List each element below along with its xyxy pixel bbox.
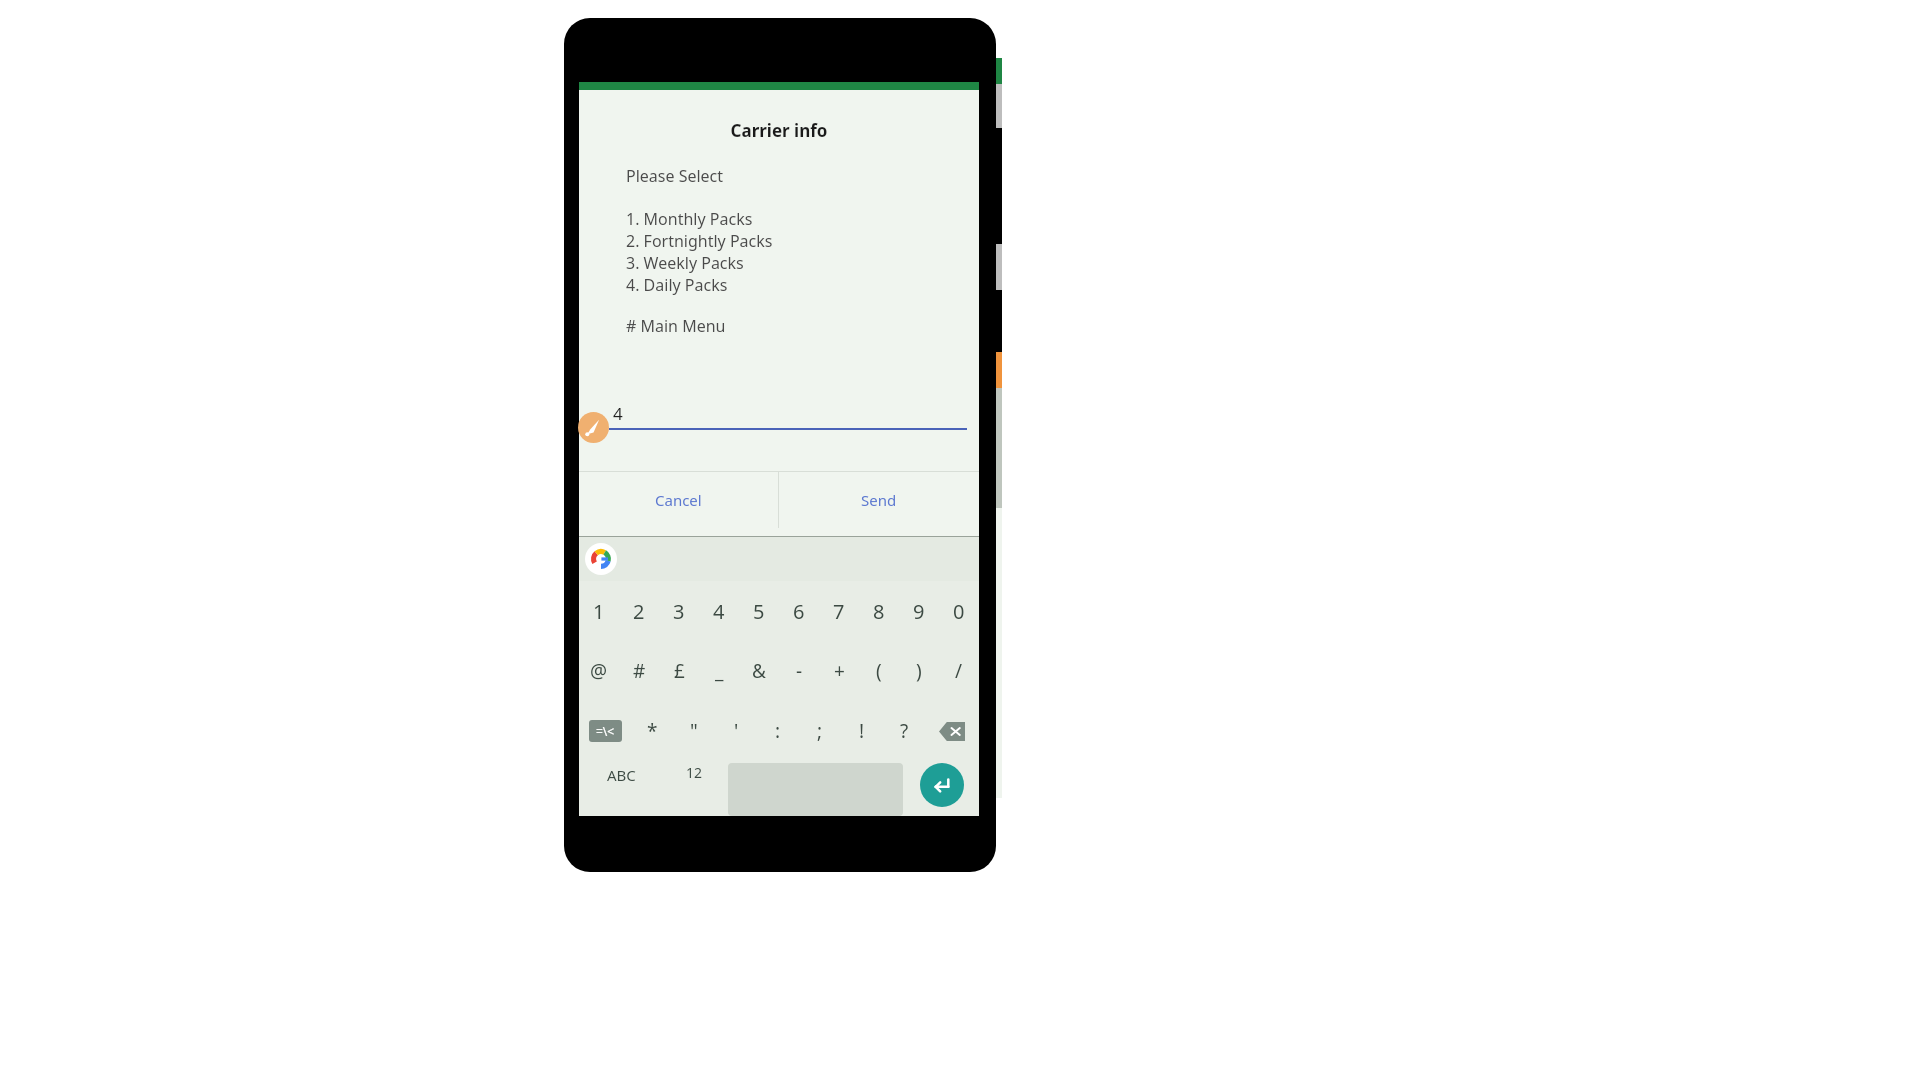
staticText: " [690, 718, 698, 744]
button[interactable]: : [757, 701, 799, 761]
button[interactable]: ( [859, 641, 899, 701]
staticText: ABC [607, 765, 636, 785]
staticText: ; [817, 718, 823, 744]
button[interactable]: _ [699, 641, 739, 701]
button[interactable]: =\< [579, 701, 632, 761]
staticText: Carrier info [579, 119, 979, 142]
button[interactable]: ABC [579, 761, 663, 816]
staticText: 2 [633, 598, 645, 625]
staticText: Cancel [655, 490, 702, 510]
staticText: ! [859, 718, 865, 744]
staticText: @ [590, 658, 608, 684]
button[interactable]: Cancel [579, 472, 778, 528]
button[interactable]: ; [799, 701, 841, 761]
staticText: 4 [613, 402, 623, 425]
staticText: 4. Daily Packs [626, 274, 728, 296]
staticText: 12 [686, 763, 703, 782]
staticText: ) [916, 658, 922, 684]
button[interactable]: 1 [579, 581, 619, 641]
button[interactable]: 0 [939, 581, 979, 641]
staticText: 0 [953, 598, 965, 625]
button[interactable]: / [939, 641, 979, 701]
button[interactable]: Send [779, 472, 979, 528]
button[interactable]: 9 [899, 581, 939, 641]
button[interactable]: ! [841, 701, 883, 761]
staticText: =\< [596, 723, 615, 739]
button[interactable]: @ [579, 641, 619, 701]
button[interactable]: ? [883, 701, 925, 761]
staticText: Please Select [626, 165, 724, 187]
button[interactable]: ) [899, 641, 939, 701]
button[interactable]: 5 [739, 581, 779, 641]
staticText: 7 [833, 598, 845, 625]
button[interactable]: 2 [619, 581, 659, 641]
button[interactable]: £ [659, 641, 699, 701]
staticText: 8 [873, 598, 885, 625]
button[interactable]: 7 [819, 581, 859, 641]
button[interactable]: 3 [659, 581, 699, 641]
staticText: * [647, 718, 658, 744]
button[interactable]: 4 [699, 581, 739, 641]
staticText: ? [900, 718, 909, 744]
staticText: # [633, 658, 646, 684]
staticText: + [834, 658, 845, 684]
staticText: 1. Monthly Packs [626, 208, 753, 230]
staticText: 9 [913, 598, 925, 625]
button[interactable]: - [779, 641, 819, 701]
button[interactable]: * [632, 701, 673, 761]
staticText: 3. Weekly Packs [626, 252, 744, 274]
staticText: _ [715, 658, 724, 684]
staticText: ( [876, 658, 882, 684]
staticText: Send [861, 490, 897, 510]
button[interactable]: # [619, 641, 659, 701]
staticText: / [955, 658, 963, 684]
staticText: & [752, 658, 766, 684]
button[interactable]: " [673, 701, 715, 761]
button[interactable]: ' [715, 701, 757, 761]
staticText: 2. Fortnightly Packs [626, 230, 773, 252]
button[interactable]: & [739, 641, 779, 701]
button[interactable]: + [819, 641, 859, 701]
staticText: 3 [673, 598, 685, 625]
button[interactable]: 4 [609, 402, 967, 430]
staticText: # Main Menu [626, 315, 726, 337]
button[interactable]: Backspace [925, 701, 979, 761]
button[interactable]: Enter [920, 763, 964, 807]
staticText: 5 [753, 598, 765, 625]
staticText: ' [734, 718, 739, 744]
staticText: 6 [793, 598, 805, 625]
button[interactable]: 6 [779, 581, 819, 641]
button[interactable]: Google [585, 543, 617, 575]
button[interactable]: Draw [578, 412, 609, 443]
staticText: £ [674, 658, 685, 684]
staticText: 4 [713, 598, 725, 625]
button[interactable]: 12 [663, 761, 726, 816]
staticText: : [775, 718, 781, 744]
staticText: - [796, 658, 803, 684]
staticText: 1 [593, 598, 605, 625]
button[interactable]: 8 [859, 581, 899, 641]
